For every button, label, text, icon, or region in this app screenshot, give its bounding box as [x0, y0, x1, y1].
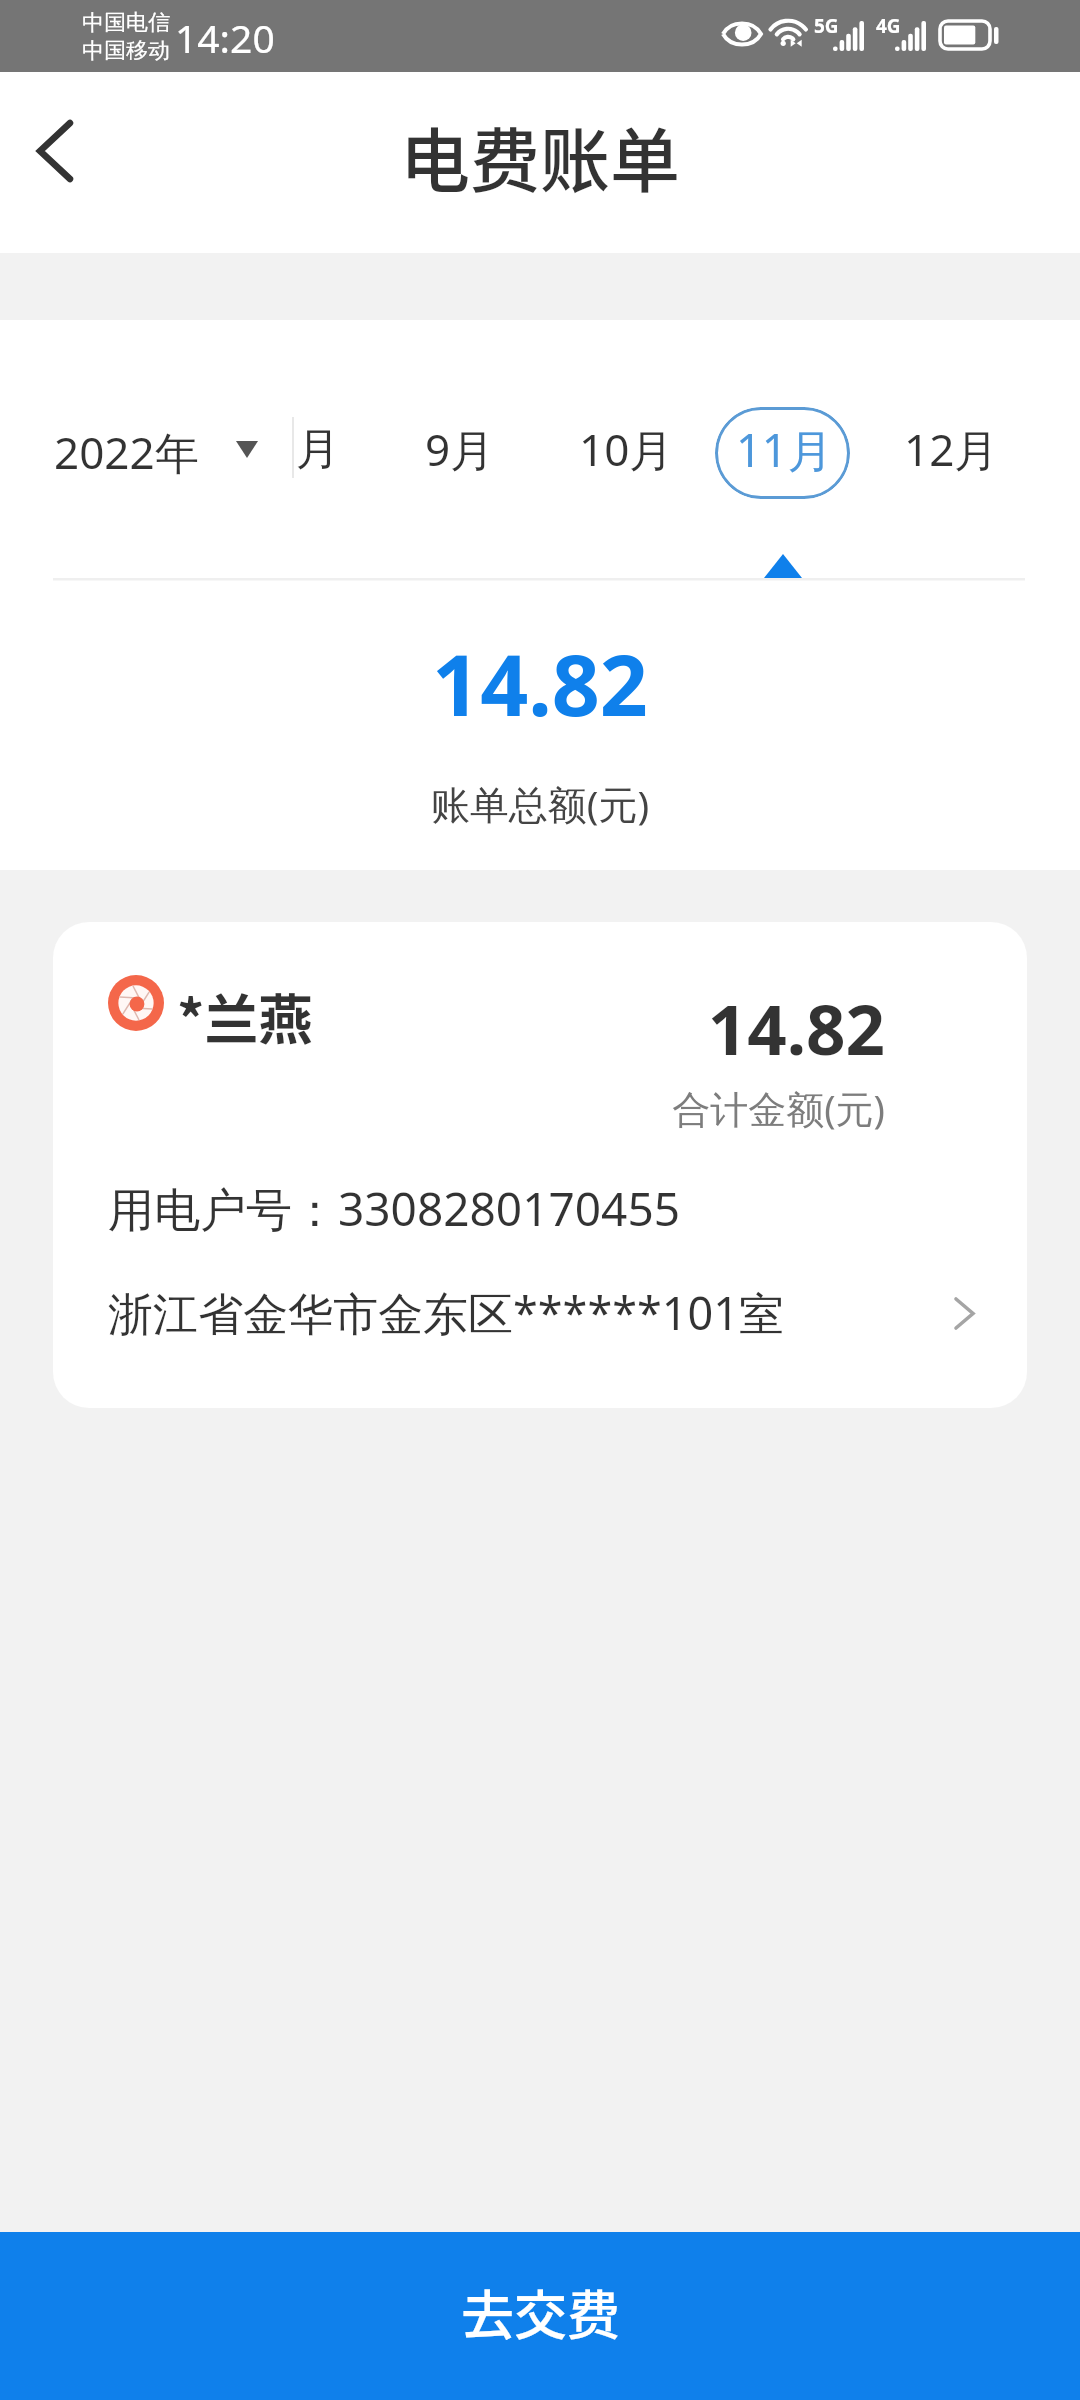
button[interactable]: 去交费 — [0, 2232, 1080, 2400]
button[interactable]: *兰燕 — [53, 922, 1027, 1408]
button[interactable]: 月 — [282, 403, 354, 495]
staticText: *兰燕 — [177, 977, 313, 1055]
button[interactable]: 9月 — [411, 403, 509, 495]
staticText: 中国移动 — [82, 37, 170, 65]
staticText: 4G — [876, 13, 901, 39]
staticText: 5G — [814, 13, 839, 39]
staticText: 14.82 — [0, 626, 1080, 740]
staticText: 去交费 — [461, 2274, 620, 2351]
button[interactable]: 12月 — [890, 403, 1013, 495]
staticText: 用电户号：3308280170455 — [108, 1177, 681, 1240]
button[interactable]: 2022年 — [44, 408, 268, 496]
button[interactable]: Back — [3, 76, 107, 226]
staticText: 10月 — [579, 419, 674, 479]
staticText: 账单总额(元) — [0, 777, 1080, 830]
staticText: 电费账单 — [400, 106, 680, 207]
staticText: 浙江省金华市金东区******101室 — [108, 1282, 784, 1343]
staticText: 12月 — [904, 419, 999, 479]
staticText: 2022年 — [54, 422, 199, 482]
staticText: 11月 — [736, 419, 833, 480]
button[interactable]: 10月 — [565, 403, 688, 495]
button[interactable]: 11月 — [715, 407, 850, 499]
staticText: 14.82 — [53, 981, 885, 1075]
staticText: 月 — [296, 422, 340, 477]
staticText: 14:20 — [175, 11, 275, 64]
staticText: 中国电信 — [82, 9, 170, 37]
staticText: 合计金额(元) — [53, 1082, 885, 1134]
staticText: 9月 — [425, 419, 495, 479]
